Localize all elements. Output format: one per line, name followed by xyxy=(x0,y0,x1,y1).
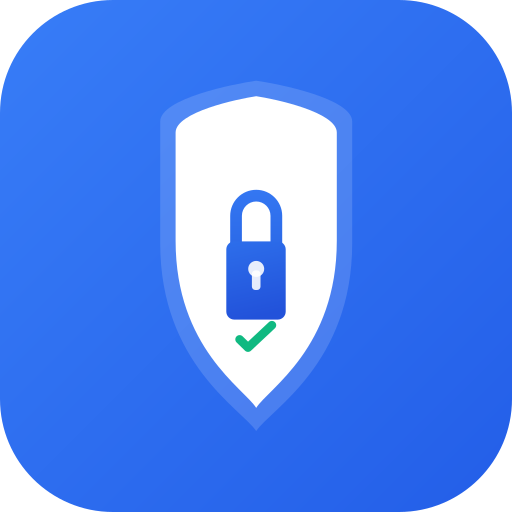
button[interactable]: Secure Lock xyxy=(0,0,512,512)
